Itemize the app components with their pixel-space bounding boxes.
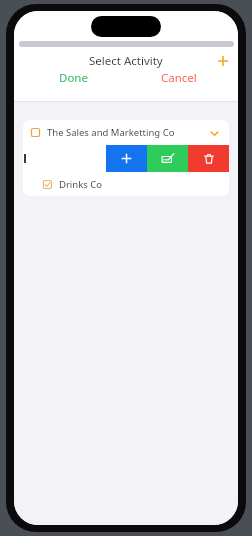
staticText: Done [59,70,88,86]
button[interactable]: Done [20,70,126,86]
button[interactable]: Drinks Co [23,172,229,196]
staticText: Cancel [161,70,197,86]
button[interactable]: Add [106,145,147,172]
staticText: Select Activity [89,53,163,69]
button[interactable]: Delete [188,145,229,172]
button[interactable]: Cancel [126,70,232,86]
button[interactable]: The Sales and Marketting Co [23,120,229,145]
button[interactable]: Add activity [212,50,234,72]
staticText: Drinks Co [59,178,103,191]
staticText: The Sales and Marketting Co [47,126,175,139]
button[interactable]: Collapse group [207,126,221,140]
button[interactable]: Sign [147,145,188,172]
